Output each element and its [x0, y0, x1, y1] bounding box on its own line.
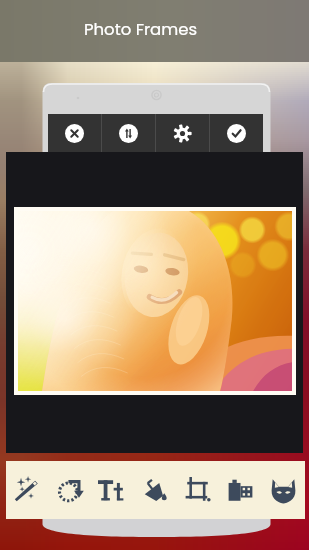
button[interactable]: Fill colour	[133, 461, 176, 519]
button[interactable]: Flip	[102, 114, 155, 152]
button[interactable]: Text	[90, 461, 133, 519]
staticText: Photo Frames	[84, 18, 198, 41]
button[interactable]: Settings	[156, 114, 209, 152]
button[interactable]: Crop	[176, 461, 219, 519]
button[interactable]: Done	[210, 114, 263, 152]
button[interactable]: Effects	[6, 461, 48, 519]
button[interactable]: Film	[219, 461, 262, 519]
button[interactable]: Close	[48, 114, 101, 152]
button[interactable]: Rotate	[48, 461, 90, 519]
button[interactable]: Stickers	[262, 461, 305, 519]
